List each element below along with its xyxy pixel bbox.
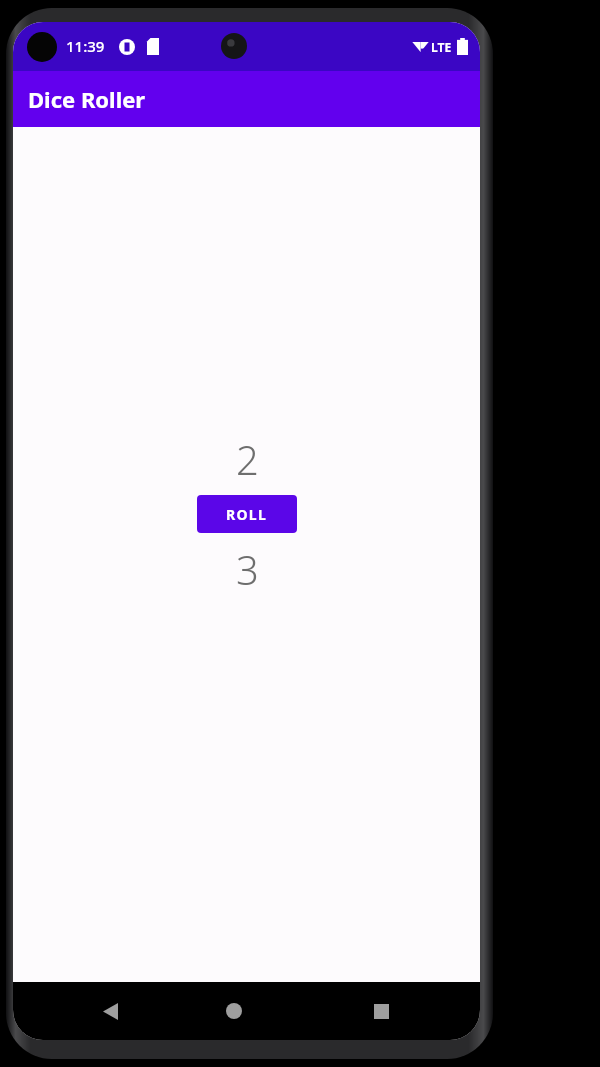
staticText: ROLL — [226, 505, 268, 524]
button[interactable]: Back — [86, 987, 134, 1035]
staticText: 11:39 — [66, 36, 105, 56]
staticText: 3 — [236, 542, 259, 596]
staticText: LTE — [431, 39, 452, 55]
button[interactable]: ROLL — [197, 495, 297, 533]
staticText: Dice Roller — [28, 84, 146, 114]
button[interactable]: Recent apps — [357, 987, 405, 1035]
button[interactable]: Home — [210, 987, 258, 1035]
staticText: 2 — [236, 432, 259, 486]
